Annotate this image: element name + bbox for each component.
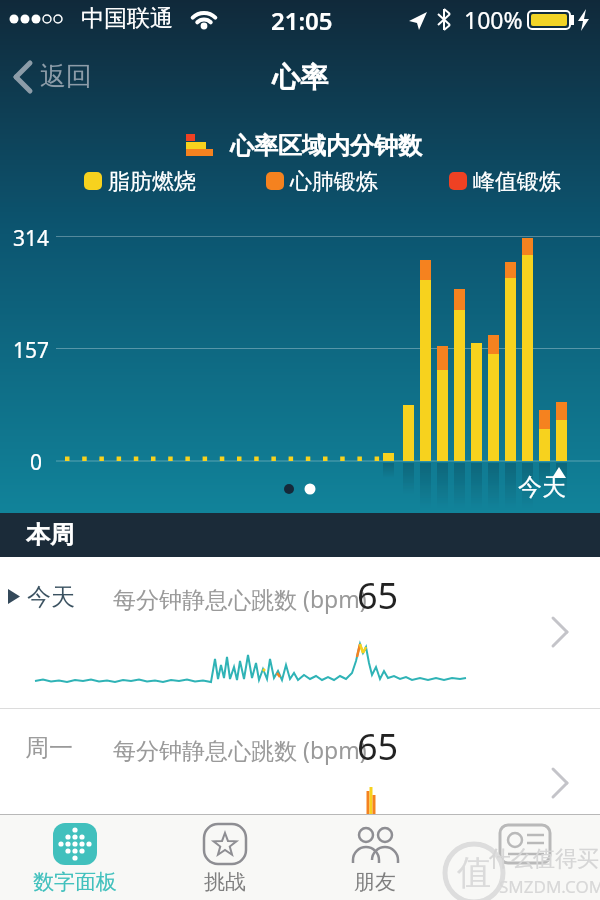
staticText: 今天 [518,472,566,502]
staticText: 心率区域内分钟数 [230,131,422,161]
button[interactable]: 朋友 [315,815,435,900]
button[interactable]: 返回 [0,52,130,100]
staticText: 什么值得买 [489,845,599,873]
staticText: 100% [464,4,523,35]
staticText: 挑战 [204,869,246,895]
staticText: SMZDM.COM [499,875,600,898]
staticText: 157 [13,336,50,365]
staticText: 每分钟静息心跳数 (bpm) [113,583,367,614]
staticText: 314 [13,224,50,253]
staticText: 朋友 [354,869,396,895]
staticText: 脂肪燃烧 [108,168,196,196]
staticText: 65 [357,571,399,620]
button[interactable]: 数字面板 [15,815,135,900]
staticText: 21:05 [271,4,333,37]
staticText: 心肺锻炼 [290,168,378,196]
staticText: 返回 [40,60,92,93]
staticText: 中国联通 [81,4,173,33]
button[interactable]: 今天 [0,557,600,708]
button[interactable]: 周一 [0,709,600,900]
staticText: 0 [30,448,43,477]
staticText: 心率 [272,60,328,95]
staticText: 数字面板 [33,869,117,895]
staticText: 值 [457,851,491,894]
staticText: 本周 [26,520,74,550]
staticText: 峰值锻炼 [473,168,561,196]
button[interactable] [465,815,585,900]
button[interactable]: 挑战 [165,815,285,900]
staticText: 今天 [27,582,75,612]
staticText: 每分钟静息心跳数 (bpm) [113,734,367,765]
staticText: 65 [357,722,399,771]
staticText: 周一 [25,733,73,763]
